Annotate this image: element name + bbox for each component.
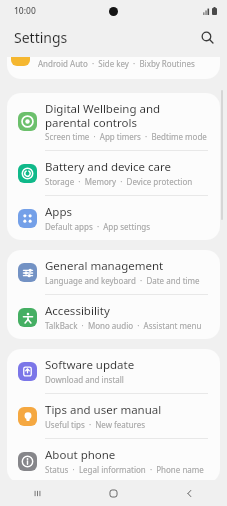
staticText: About phone [45,447,116,463]
staticText: Apps [45,204,73,220]
staticText: Language and keyboard · Date and time [45,275,200,286]
staticText: Battery and device care [45,159,172,175]
staticText: Storage · Memory · Device protection [45,176,193,187]
button[interactable]: Home [75,480,151,506]
button[interactable]: Software update [7,349,220,394]
staticText: Android Auto · Side key · Bixby Routines [38,58,195,69]
button[interactable]: Android Auto · Side key · Bixby Routines [7,57,220,79]
staticText: 10:00 [14,5,36,17]
button[interactable]: Back [151,480,227,506]
staticText: Useful tips · New features [45,419,146,430]
staticText: Settings [14,28,68,47]
button[interactable]: General management [7,250,220,295]
staticText: Screen time · App timers · Bedtime mode [45,131,207,142]
button[interactable]: Tips and user manual [7,394,220,439]
staticText: Default apps · App settings [45,221,151,232]
staticText: TalkBack · Mono audio · Assistant menu [45,320,202,331]
staticText: Download and install [45,374,124,385]
staticText: Digital Wellbeing and parental controls [45,101,208,130]
button[interactable]: About phone [7,439,220,483]
button[interactable]: Digital Wellbeing and parental controls [7,93,220,151]
staticText: Tips and user manual [45,402,162,418]
staticText: Software update [45,357,135,373]
button[interactable]: Accessibility [7,295,220,339]
button[interactable]: Recents [0,480,75,506]
button[interactable]: Search [195,25,219,49]
button[interactable]: Battery and device care [7,151,220,196]
staticText: Accessibility [45,303,110,319]
staticText: Status · Legal information · Phone name [45,464,204,475]
button[interactable]: Apps [7,196,220,240]
staticText: General management [45,258,164,274]
